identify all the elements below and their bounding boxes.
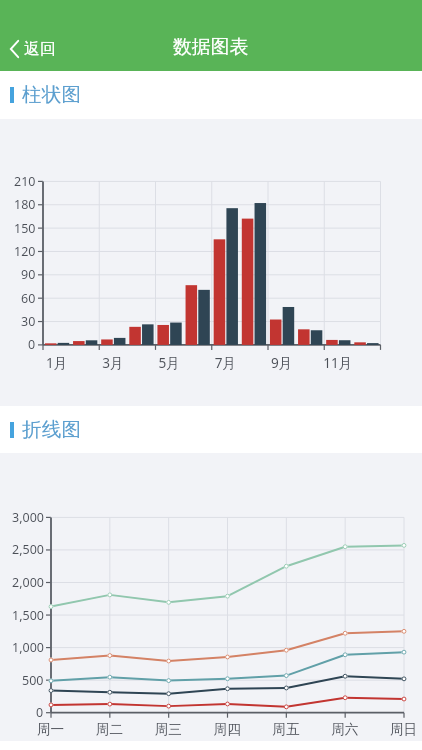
other: Back: [10, 40, 19, 58]
staticText: 返回: [24, 39, 56, 59]
button[interactable]: Back: [0, 29, 66, 65]
staticText: 柱状图: [22, 82, 82, 107]
staticText: 折线图: [22, 417, 82, 442]
staticText: 数据图表: [173, 35, 249, 59]
